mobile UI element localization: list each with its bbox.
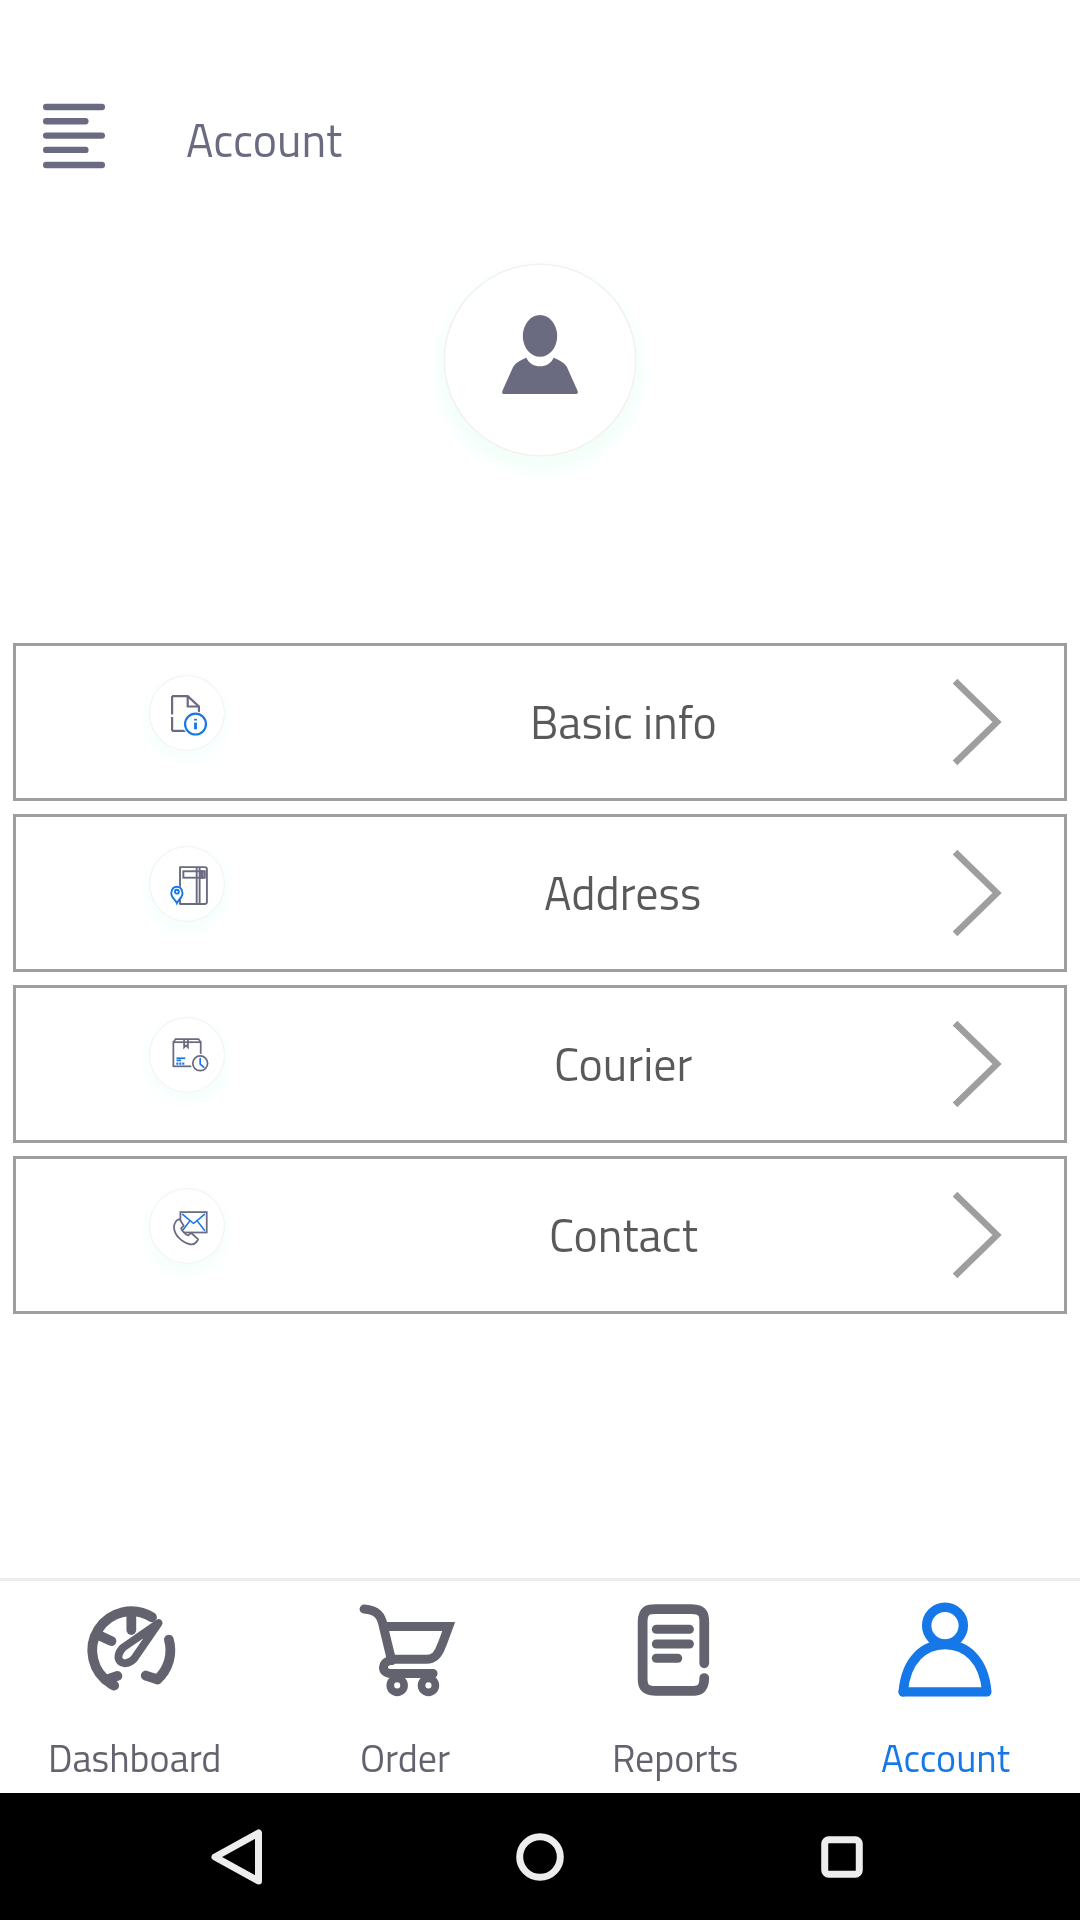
staticText: Basic info xyxy=(530,687,717,757)
staticText: Contact xyxy=(549,1200,698,1270)
button[interactable]: Recent apps xyxy=(752,1793,932,1920)
button[interactable]: Dashboard xyxy=(0,1581,270,1793)
staticText: Courier xyxy=(554,1029,693,1099)
button[interactable]: Contact xyxy=(13,1156,1067,1314)
staticText: Address xyxy=(544,858,702,928)
button[interactable]: Basic info xyxy=(13,643,1067,801)
button[interactable]: Account xyxy=(810,1581,1080,1793)
button[interactable]: Menu xyxy=(10,72,138,200)
button[interactable]: Reports xyxy=(540,1581,810,1793)
staticText: Reports xyxy=(612,1729,739,1787)
staticText: Order xyxy=(360,1729,451,1787)
staticText: Dashboard xyxy=(48,1729,222,1787)
button[interactable]: Back xyxy=(146,1793,326,1920)
button[interactable]: Home xyxy=(450,1793,630,1920)
staticText: Account xyxy=(881,1729,1010,1787)
button[interactable]: Order xyxy=(270,1581,540,1793)
staticText: Account xyxy=(186,105,343,175)
button[interactable]: Address xyxy=(13,814,1067,972)
button[interactable]: Courier xyxy=(13,985,1067,1143)
